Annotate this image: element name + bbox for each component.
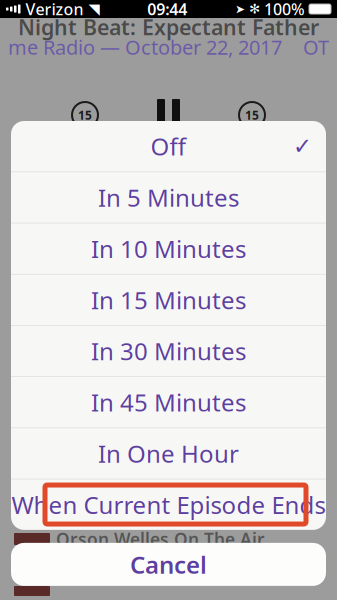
button[interactable]: Skip back 15 seconds xyxy=(68,98,102,132)
staticText: 15 xyxy=(78,107,92,123)
staticText: 15 xyxy=(245,107,259,123)
staticText: 100% xyxy=(264,0,305,20)
button[interactable]: When Current Episode Ends xyxy=(11,479,326,530)
staticText: In 30 Minutes xyxy=(91,335,246,367)
staticText: ✻ xyxy=(249,1,260,16)
staticText: In 45 Minutes xyxy=(91,386,246,418)
staticText: In One Hour xyxy=(98,437,239,469)
staticText: ➤ xyxy=(235,2,245,16)
staticText: me Radio — October 22, 2017 xyxy=(8,34,282,60)
staticText: 09:44 xyxy=(147,0,187,20)
button[interactable]: In 45 Minutes xyxy=(11,377,326,427)
staticText: ✓ xyxy=(293,133,312,159)
staticText: Verizon xyxy=(25,0,83,20)
staticText: When Current Episode Ends xyxy=(11,489,325,521)
staticText: ◥ xyxy=(88,1,99,17)
staticText: Night Beat: Expectant Father xyxy=(18,13,319,41)
button[interactable]: Off xyxy=(11,121,326,171)
staticText: Orson Welles On The Air xyxy=(56,527,265,550)
staticText: OT xyxy=(303,34,329,60)
button[interactable]: In 5 Minutes xyxy=(11,172,326,223)
staticText: In 5 Minutes xyxy=(98,181,239,213)
button[interactable]: Cancel xyxy=(11,543,326,586)
staticText: In 10 Minutes xyxy=(91,233,246,265)
staticText: Cancel xyxy=(130,548,207,580)
button[interactable]: In One Hour xyxy=(11,428,326,479)
button[interactable]: In 15 Minutes xyxy=(11,275,326,325)
staticText: Off xyxy=(150,130,186,162)
button[interactable]: Skip forward 15 seconds xyxy=(235,98,269,132)
staticText: In 15 Minutes xyxy=(91,284,246,316)
button[interactable]: In 10 Minutes xyxy=(11,223,326,274)
button[interactable]: In 30 Minutes xyxy=(11,326,326,376)
